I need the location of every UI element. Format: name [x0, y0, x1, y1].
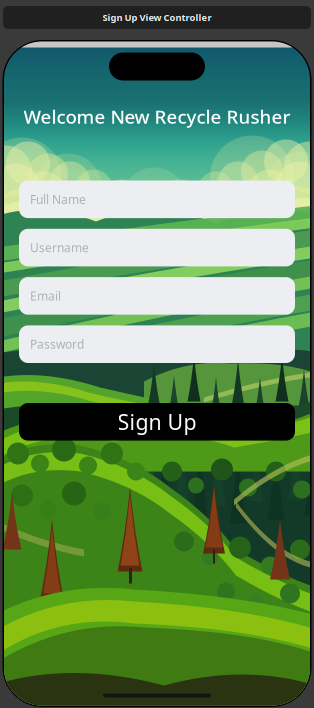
staticText: Email	[30, 288, 61, 304]
staticText: Full Name	[30, 191, 86, 207]
button[interactable]: Sign Up	[19, 403, 295, 441]
button[interactable]: Full Name	[19, 180, 295, 218]
button[interactable]: Email	[19, 277, 295, 315]
staticText: Sign Up	[117, 408, 196, 436]
staticText: Sign Up View Controller	[102, 11, 211, 24]
button[interactable]: Password	[19, 325, 295, 363]
button[interactable]: Username	[19, 229, 295, 266]
staticText: Username	[30, 240, 89, 255]
staticText: Password	[30, 336, 84, 352]
staticText: Welcome New Recycle Rusher	[23, 104, 290, 129]
